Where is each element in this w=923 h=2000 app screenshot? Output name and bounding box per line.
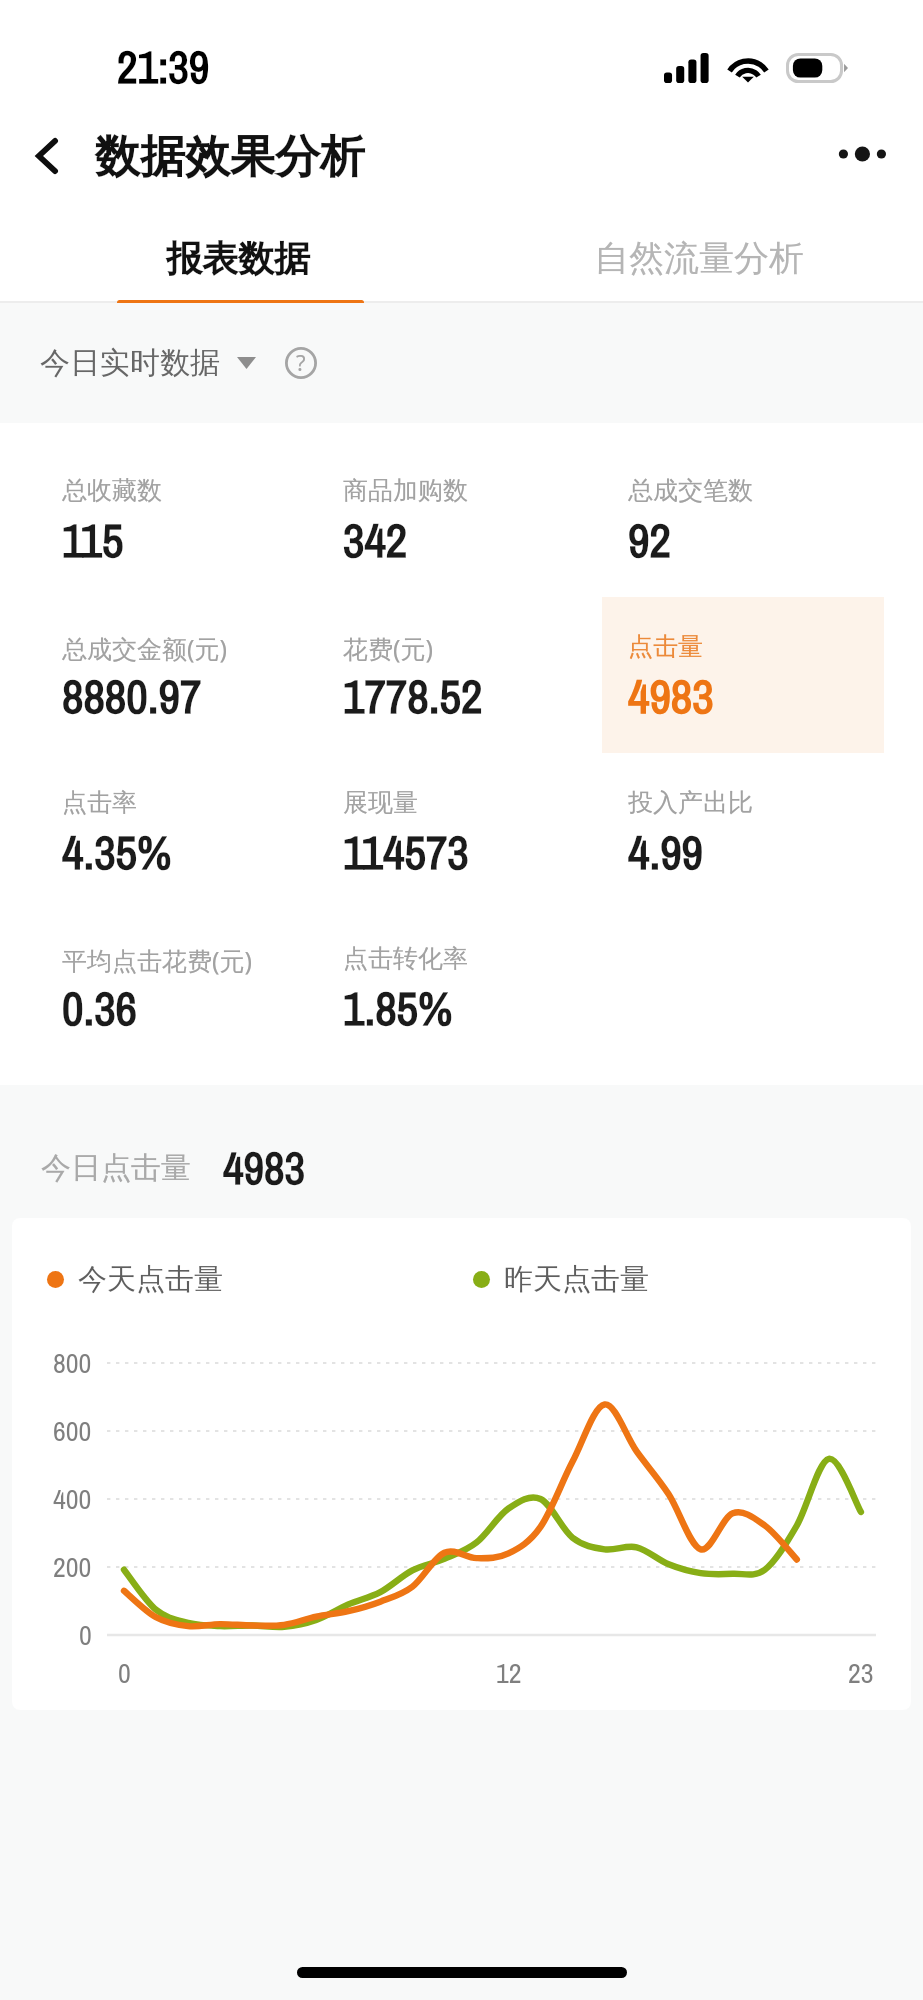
- button[interactable]: Back: [0, 110, 94, 205]
- staticText: 92: [628, 508, 671, 571]
- staticText: 4.99: [628, 820, 704, 883]
- button[interactable]: 报表数据: [0, 205, 461, 303]
- staticText: 点击率: [62, 787, 137, 818]
- staticText: 报表数据: [166, 236, 310, 281]
- staticText: 点击转化率: [343, 943, 468, 974]
- staticText: 平均点击花费(元): [62, 943, 253, 977]
- staticText: 1778.52: [343, 664, 483, 727]
- button[interactable]: 今天点击量: [47, 1261, 223, 1298]
- button[interactable]: More options: [803, 110, 923, 205]
- staticText: 投入产出比: [628, 787, 753, 818]
- staticText: 4.35%: [62, 820, 172, 883]
- staticText: 1.85%: [343, 976, 453, 1039]
- staticText: 总成交笔数: [628, 475, 753, 506]
- staticText: 21:39: [117, 36, 210, 97]
- staticText: 115: [62, 508, 124, 571]
- staticText: 4983: [628, 664, 714, 727]
- staticText: 数据效果分析: [95, 129, 365, 186]
- staticText: 展现量: [343, 787, 418, 818]
- staticText: 8880.97: [62, 664, 202, 727]
- staticText: 花费(元): [343, 631, 434, 665]
- staticText: 昨天点击量: [504, 1261, 649, 1298]
- button[interactable]: 昨天点击量: [473, 1261, 649, 1298]
- staticText: 4983: [223, 1137, 306, 1198]
- staticText: 600: [53, 1412, 92, 1450]
- staticText: 12: [496, 1654, 522, 1692]
- staticText: ?: [296, 347, 306, 377]
- staticText: 0.36: [62, 976, 138, 1039]
- staticText: 总成交金额(元): [62, 631, 228, 665]
- staticText: 800: [53, 1344, 92, 1382]
- staticText: 总收藏数: [62, 475, 162, 506]
- staticText: 商品加购数: [343, 475, 468, 506]
- button[interactable]: 今日实时数据: [40, 344, 256, 382]
- staticText: 今日实时数据: [40, 344, 220, 382]
- staticText: 自然流量分析: [594, 236, 804, 280]
- button[interactable]: Help: [284, 346, 318, 380]
- button[interactable]: 自然流量分析: [461, 205, 923, 303]
- staticText: 400: [53, 1480, 92, 1518]
- staticText: 点击量: [628, 631, 703, 662]
- staticText: 23: [848, 1654, 874, 1692]
- staticText: 今天点击量: [78, 1261, 223, 1298]
- staticText: 342: [343, 508, 408, 571]
- staticText: 今日点击量: [41, 1149, 191, 1187]
- staticText: 0: [118, 1654, 131, 1692]
- staticText: 200: [53, 1548, 92, 1586]
- staticText: 114573: [343, 820, 469, 883]
- staticText: 0: [79, 1616, 92, 1654]
